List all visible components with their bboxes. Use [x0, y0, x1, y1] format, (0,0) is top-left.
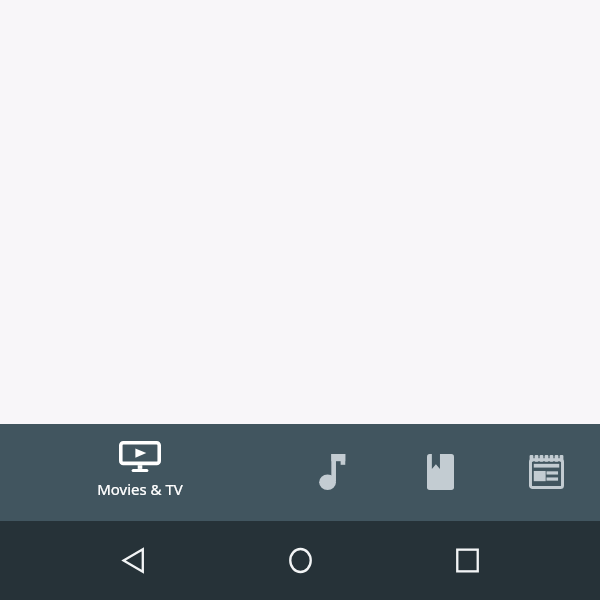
button[interactable]: Newsstand	[504, 443, 588, 501]
button[interactable]: Music	[290, 443, 374, 501]
button[interactable]: Books	[398, 443, 482, 501]
button[interactable]: Back	[103, 521, 163, 600]
button[interactable]: Movies & TV	[80, 424, 200, 521]
button[interactable]: Recents	[437, 521, 497, 600]
button[interactable]: Home	[270, 521, 330, 600]
staticText: Movies & TV	[97, 479, 183, 499]
